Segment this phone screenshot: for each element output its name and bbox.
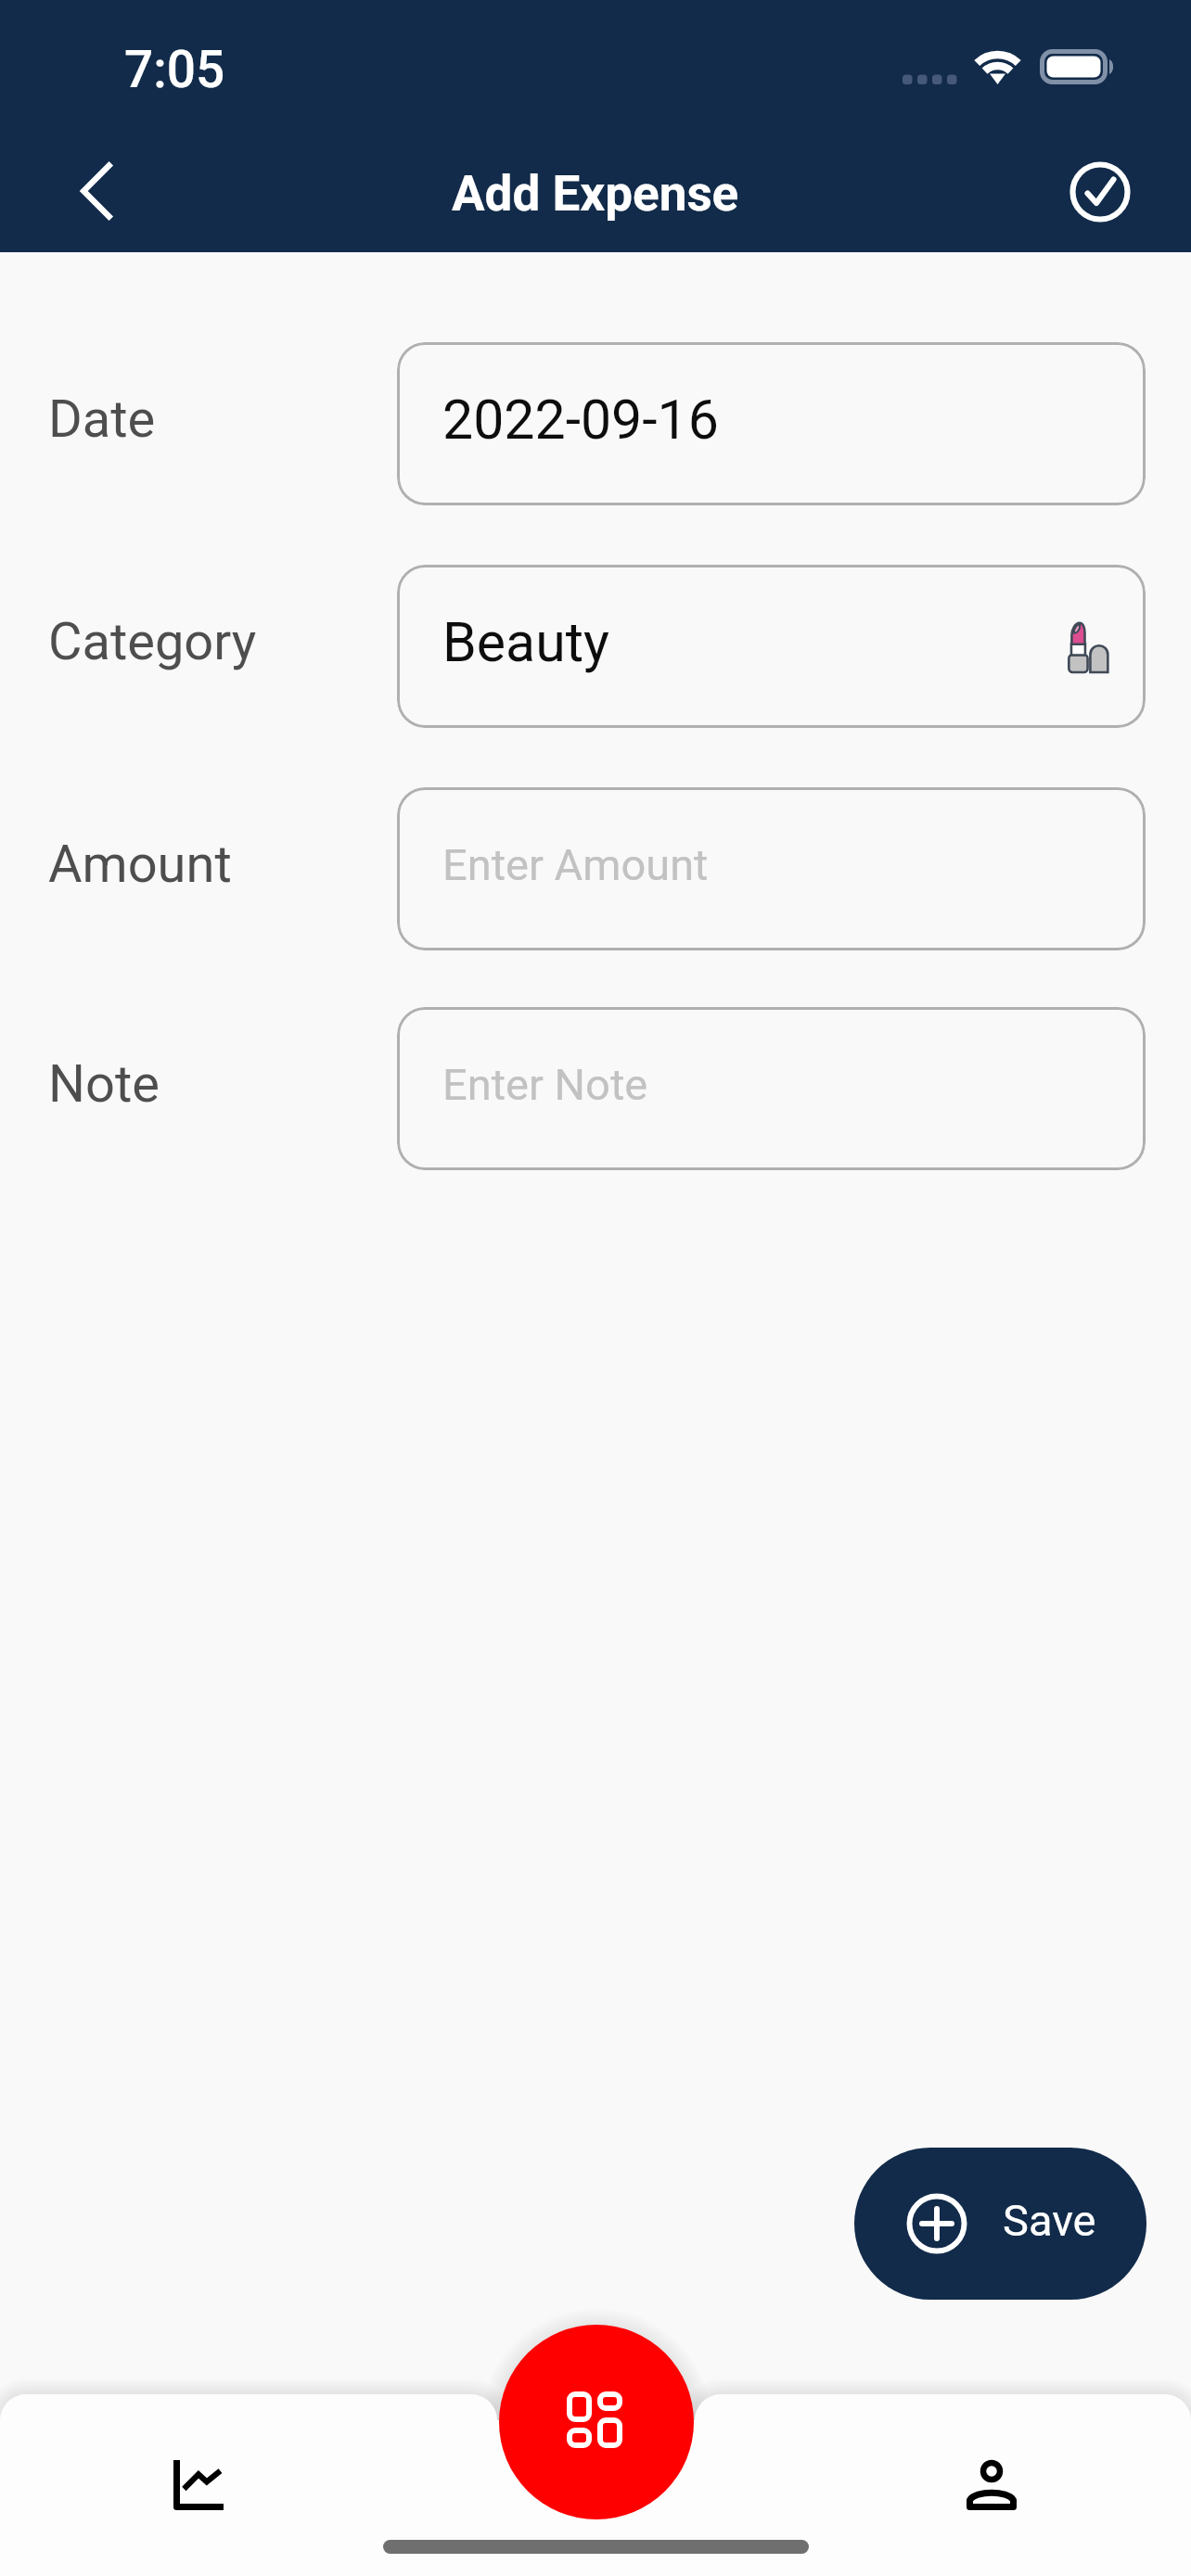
staticText: Note: [48, 1053, 160, 1115]
staticText: Date: [48, 389, 156, 450]
button[interactable]: Statistics: [124, 2424, 273, 2546]
button[interactable]: Enter Amount: [397, 787, 1146, 950]
staticText: Beauty: [442, 610, 609, 674]
staticText: Enter Note: [442, 1059, 648, 1110]
button[interactable]: 2022-09-16: [397, 342, 1146, 505]
button[interactable]: Back: [42, 135, 153, 247]
button[interactable]: Save: [854, 2148, 1146, 2300]
staticText: Category: [48, 611, 257, 672]
button[interactable]: Dashboard: [499, 2325, 694, 2519]
staticText: 7:05: [124, 40, 225, 99]
staticText: 2022-09-16: [442, 388, 719, 452]
staticText: Add Expense: [452, 165, 739, 223]
button[interactable]: Beauty: [397, 565, 1146, 728]
staticText: Enter Amount: [442, 839, 709, 890]
staticText: Amount: [48, 834, 232, 895]
button[interactable]: Profile: [917, 2424, 1066, 2546]
button[interactable]: Confirm: [1044, 136, 1156, 248]
button[interactable]: Enter Note: [397, 1007, 1146, 1170]
staticText: Save: [1003, 2195, 1096, 2246]
